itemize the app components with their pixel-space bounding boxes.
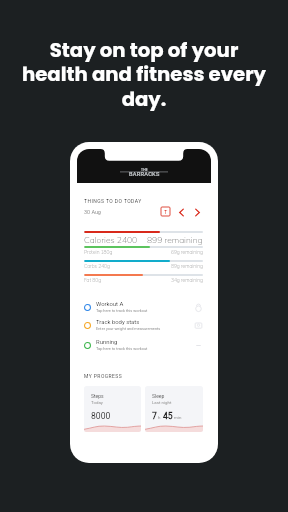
staticText: Track body stats: [96, 319, 140, 326]
button[interactable]: Workout A: [84, 299, 203, 315]
staticText: Running: [96, 339, 118, 346]
button[interactable]: Next day: [192, 207, 203, 218]
staticText: THE: [141, 168, 148, 172]
staticText: Enter your weight and measurements: [96, 326, 161, 331]
button[interactable]: Track body stats: [84, 317, 203, 333]
staticText: 34g remaining: [171, 277, 203, 283]
staticText: Fat 80g: [84, 277, 102, 283]
button[interactable]: Steps: [84, 386, 141, 432]
staticText: Tap here to track this workout: [96, 346, 148, 351]
staticText: min: [174, 415, 182, 420]
staticText: Stay on top of your health and fitness e…: [16, 36, 272, 113]
staticText: Calories 2400: [84, 234, 138, 245]
staticText: 30 Aug: [84, 209, 101, 215]
staticText: Last night: [152, 400, 172, 405]
staticText: Protein 180g: [84, 249, 113, 255]
staticText: Steps: [91, 393, 104, 399]
staticText: THINGS TO DO TODAY: [84, 198, 142, 204]
button[interactable]: Previous day: [176, 207, 187, 218]
staticText: Workout A: [96, 301, 124, 308]
staticText: 69g remaining: [171, 249, 203, 255]
staticText: Today: [91, 400, 103, 405]
staticText: h: [158, 415, 161, 420]
staticText: BARRACKS: [129, 171, 160, 178]
staticText: 7: [152, 411, 157, 421]
staticText: Carbs 240g: [84, 263, 110, 269]
staticText: 45: [163, 411, 173, 421]
staticText: MY PROGRESS: [84, 373, 123, 379]
button[interactable]: Running: [84, 337, 203, 353]
staticText: 899 remaining: [147, 234, 203, 245]
staticText: 89g remaining: [171, 263, 203, 269]
staticText: Sleep: [152, 393, 165, 399]
staticText: 8000: [91, 411, 111, 421]
button[interactable]: Sleep: [145, 386, 203, 432]
staticText: Tap here to track this workout: [96, 308, 148, 313]
button[interactable]: Today: [161, 207, 170, 216]
staticText: T: [164, 209, 168, 215]
